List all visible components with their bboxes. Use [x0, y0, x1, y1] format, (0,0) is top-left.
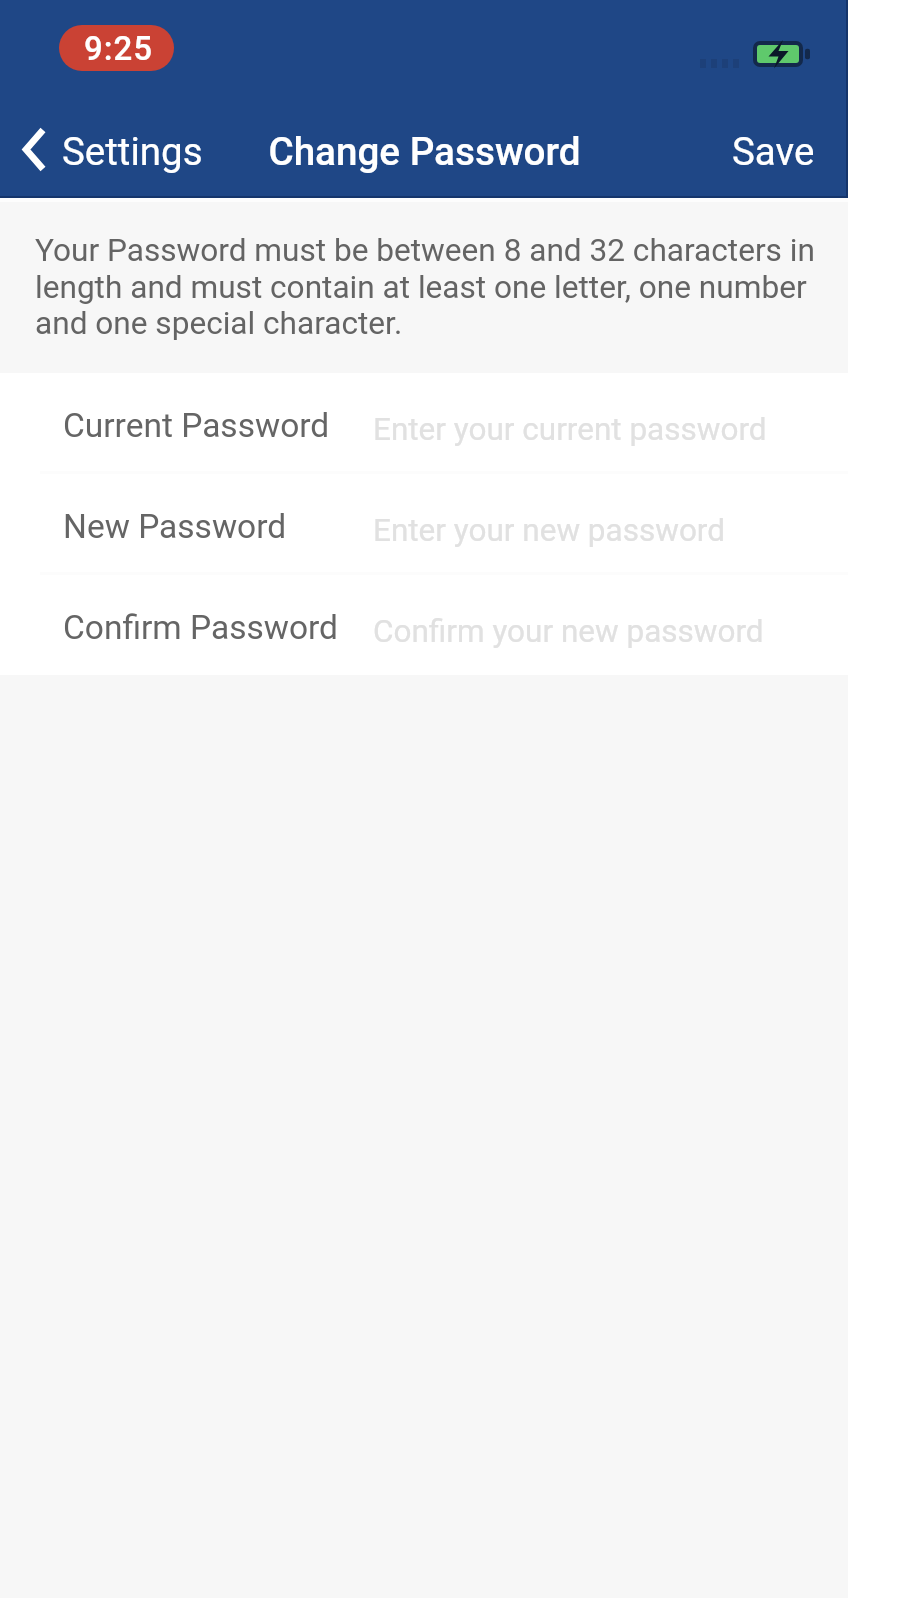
- staticText: Settings: [62, 129, 203, 174]
- staticText: Confirm Password: [63, 608, 338, 647]
- other: Signal: [700, 59, 742, 68]
- staticText: Enter your new password: [373, 512, 725, 549]
- staticText: Current Password: [63, 406, 330, 445]
- button[interactable]: New Password: [0, 474, 848, 575]
- button[interactable]: Save: [712, 117, 848, 186]
- staticText: New Password: [63, 507, 287, 546]
- button[interactable]: Confirm Password: [0, 575, 848, 675]
- staticText: Save: [732, 129, 815, 174]
- staticText: 9:25: [84, 29, 154, 68]
- staticText: Enter your current password: [373, 411, 767, 448]
- button[interactable]: Current Password: [0, 373, 848, 474]
- staticText: Change Password: [268, 129, 581, 174]
- other: Back: [23, 127, 46, 172]
- staticText: Confirm your new password: [373, 613, 764, 650]
- staticText: Your Password must be between 8 and 32 c…: [35, 232, 818, 342]
- button[interactable]: Back: [0, 119, 217, 184]
